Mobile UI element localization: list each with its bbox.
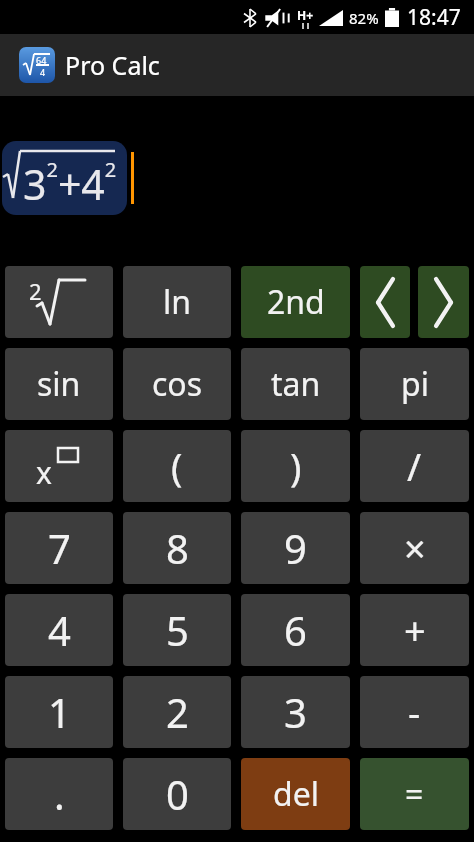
staticText: tan xyxy=(271,362,321,406)
staticText: = xyxy=(405,772,424,816)
staticText: 3 xyxy=(284,685,307,739)
button[interactable] xyxy=(418,266,469,338)
button[interactable]: ( xyxy=(123,430,231,502)
button[interactable]: 5 xyxy=(123,594,231,666)
staticText: 2 xyxy=(29,276,42,306)
button[interactable]: tan xyxy=(241,348,350,420)
staticText: 82% xyxy=(349,8,379,28)
button[interactable]: 0 xyxy=(123,758,231,830)
staticText: pi xyxy=(401,362,429,406)
button[interactable]: 7 xyxy=(5,512,113,584)
button[interactable]: 2nd xyxy=(241,266,350,338)
staticText: del xyxy=(273,772,319,816)
staticText: cos xyxy=(152,362,203,406)
staticText: ln xyxy=(163,280,192,324)
staticText: x xyxy=(36,452,52,492)
button[interactable]: 3 xyxy=(241,676,350,748)
button[interactable]: 6 xyxy=(241,594,350,666)
staticText: 64 xyxy=(36,54,47,66)
staticText: 2nd xyxy=(267,280,325,324)
staticText: 32+42 xyxy=(23,156,117,212)
staticText: sin xyxy=(37,362,81,406)
staticText: ) xyxy=(290,440,302,492)
staticText: H+ xyxy=(297,7,314,23)
button[interactable]: - xyxy=(360,676,469,748)
staticText: Pro Calc xyxy=(65,48,160,82)
staticText: 9 xyxy=(284,521,307,575)
button[interactable]: = xyxy=(360,758,469,830)
button[interactable]: sin xyxy=(5,348,113,420)
staticText: 5 xyxy=(166,603,189,657)
staticText: - xyxy=(408,686,421,738)
button[interactable]: / xyxy=(360,430,469,502)
button[interactable]: 8 xyxy=(123,512,231,584)
button[interactable]: 1 xyxy=(5,676,113,748)
button[interactable]: × xyxy=(360,512,469,584)
button[interactable]: 2 xyxy=(5,266,113,338)
staticText: 18:47 xyxy=(407,3,461,32)
staticText: 8 xyxy=(166,521,189,575)
staticText: × xyxy=(404,522,426,574)
button[interactable]: x xyxy=(5,430,113,502)
button[interactable]: . xyxy=(5,758,113,830)
staticText: 4 xyxy=(40,66,46,78)
staticText: 1 xyxy=(48,685,71,739)
staticText: 7 xyxy=(48,521,71,575)
button[interactable]: pi xyxy=(360,348,469,420)
button[interactable]: 2 xyxy=(123,676,231,748)
staticText: ( xyxy=(171,440,183,492)
button[interactable]: del xyxy=(241,758,350,830)
staticText: + xyxy=(404,604,426,656)
button[interactable]: cos xyxy=(123,348,231,420)
button[interactable]: + xyxy=(360,594,469,666)
button[interactable]: 4 xyxy=(5,594,113,666)
staticText: 0 xyxy=(166,767,189,821)
staticText: 6 xyxy=(284,603,307,657)
button[interactable]: ln xyxy=(123,266,231,338)
staticText: 2 xyxy=(166,685,189,739)
button[interactable]: ) xyxy=(241,430,350,502)
button[interactable] xyxy=(360,266,410,338)
staticText: 4 xyxy=(48,603,71,657)
staticText: . xyxy=(54,767,65,821)
button[interactable]: 9 xyxy=(241,512,350,584)
staticText: / xyxy=(407,440,422,492)
